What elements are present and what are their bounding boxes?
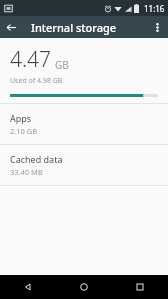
staticText: Cached data <box>10 153 63 165</box>
button[interactable]: More options <box>146 16 168 38</box>
staticText: 4.47 <box>10 45 52 74</box>
staticText: Used of 4.98 GB <box>10 76 63 86</box>
button[interactable]: Home <box>56 275 112 299</box>
staticText: 2.10 GB <box>10 126 38 136</box>
button[interactable]: Apps <box>0 104 168 144</box>
button[interactable]: Cached data <box>0 145 168 185</box>
staticText: Apps <box>10 112 32 124</box>
staticText: Internal storage <box>31 20 117 35</box>
button[interactable]: Navigate up <box>0 16 22 38</box>
staticText: GB <box>55 58 69 72</box>
staticText: 33.40 MB <box>10 167 43 177</box>
button[interactable]: Back <box>0 275 56 299</box>
button[interactable]: Recent apps <box>112 275 168 299</box>
staticText: 11:16 <box>144 3 165 14</box>
